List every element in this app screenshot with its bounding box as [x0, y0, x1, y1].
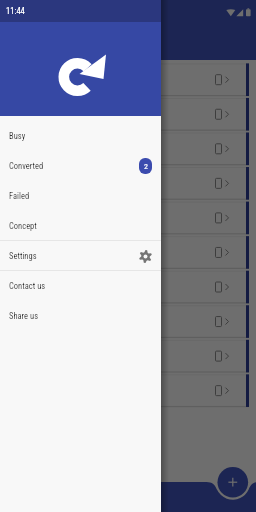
button[interactable]: Add	[217, 467, 248, 498]
button[interactable]	[8, 202, 249, 235]
button[interactable]: Busy	[0, 121, 161, 151]
button[interactable]	[8, 340, 249, 373]
staticText: Settings	[9, 251, 37, 261]
staticText: 2	[144, 162, 148, 171]
button[interactable]	[8, 305, 249, 338]
button[interactable]	[8, 133, 249, 166]
button[interactable]	[8, 236, 249, 269]
staticText: 11:44	[6, 6, 25, 16]
staticText: Concept	[9, 221, 37, 231]
other: Settings	[139, 250, 152, 263]
button[interactable]	[8, 98, 249, 131]
button[interactable]: 11:44	[0, 0, 161, 116]
button[interactable]: Converted	[0, 151, 161, 181]
staticText: Contact us	[9, 281, 46, 291]
button[interactable]	[8, 167, 249, 200]
button[interactable]: Failed	[0, 181, 161, 211]
staticText: Share us	[9, 311, 39, 321]
staticText: Busy	[9, 131, 26, 141]
button[interactable]: Contact us	[0, 271, 161, 301]
button[interactable]	[8, 63, 249, 96]
staticText: Failed	[9, 191, 30, 201]
button[interactable]: Settings	[0, 241, 161, 271]
staticText: Converted	[9, 161, 44, 171]
button[interactable]	[8, 271, 249, 304]
button[interactable]	[8, 374, 249, 407]
button[interactable]: Concept	[0, 211, 161, 241]
button[interactable]: Share us	[0, 301, 161, 331]
